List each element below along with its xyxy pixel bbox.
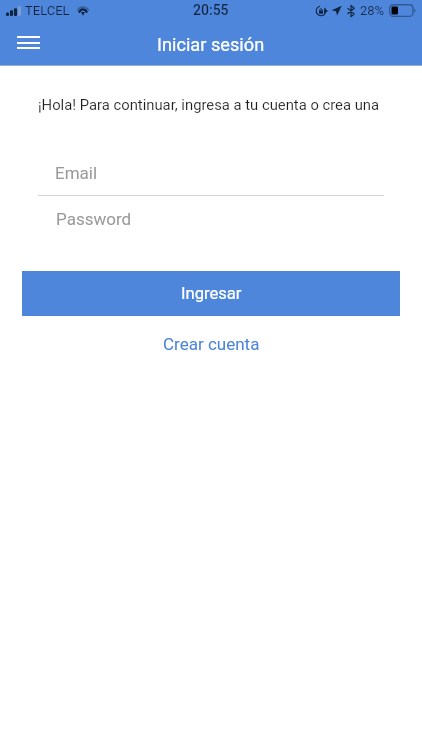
staticText: Ingresar xyxy=(181,284,242,303)
staticText: TELCEL xyxy=(25,3,70,18)
button[interactable]: Crear cuenta xyxy=(152,326,270,362)
staticText: 28% xyxy=(360,3,385,18)
staticText: Crear cuenta xyxy=(163,334,260,354)
button[interactable]: Email xyxy=(38,150,384,195)
staticText: Iniciar sesión xyxy=(157,34,265,55)
staticText: Email xyxy=(55,163,98,183)
staticText: Password xyxy=(56,209,132,229)
button[interactable]: Ingresar xyxy=(22,271,400,316)
button[interactable]: Menu xyxy=(0,20,57,64)
staticText: 20:55 xyxy=(193,2,229,18)
button[interactable]: Password xyxy=(38,196,384,241)
staticText: ¡Hola! Para continuar, ingresa a tu cuen… xyxy=(38,96,380,113)
